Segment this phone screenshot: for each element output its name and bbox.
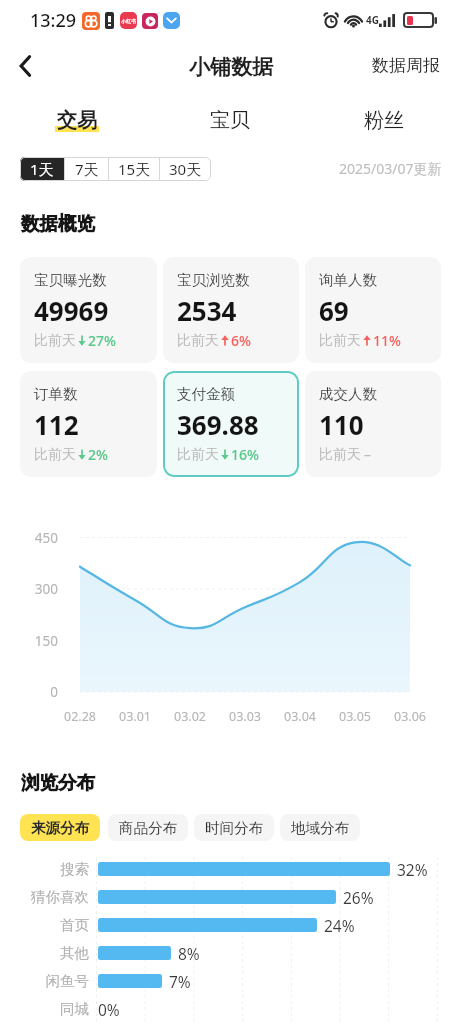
staticText: 询单人数: [319, 271, 377, 289]
staticText: 比前天: [34, 446, 76, 464]
staticText: 32%: [397, 859, 428, 880]
button[interactable]: 成交人数: [305, 371, 441, 477]
button[interactable]: 订单数: [20, 371, 157, 477]
button[interactable]: 其他: [0, 939, 461, 967]
button[interactable]: 1天: [20, 157, 64, 181]
button[interactable]: 7天: [65, 157, 108, 181]
button[interactable]: 搜索: [0, 855, 461, 883]
staticText: 小铺数据: [189, 54, 273, 80]
button[interactable]: 15天: [109, 157, 159, 181]
staticText: 成交人数: [319, 385, 377, 403]
button[interactable]: 宝贝: [153, 99, 307, 141]
button[interactable]: Back: [6, 46, 46, 86]
staticText: 112: [34, 407, 79, 442]
staticText: 比前天: [34, 332, 76, 350]
staticText: 1天: [30, 159, 54, 179]
staticText: 03.06: [385, 708, 435, 725]
staticText: 03.04: [275, 708, 325, 725]
button[interactable]: 同城: [0, 995, 461, 1023]
button[interactable]: 闲鱼号: [0, 967, 461, 995]
staticText: 13:29: [30, 8, 77, 33]
staticText: 30天: [169, 159, 202, 179]
staticText: 首页: [0, 916, 89, 934]
staticText: 11%: [373, 331, 401, 350]
staticText: 商品分布: [119, 819, 177, 837]
staticText: 02.28: [55, 708, 105, 725]
staticText: 闲鱼号: [0, 972, 89, 990]
staticText: 粉丝: [364, 108, 404, 133]
staticText: 宝贝曝光数: [34, 271, 107, 289]
button[interactable]: 支付金额: [163, 371, 299, 477]
staticText: –: [364, 445, 371, 464]
staticText: 地域分布: [291, 819, 349, 837]
button[interactable]: 来源分布: [20, 814, 100, 841]
button[interactable]: 宝贝曝光数: [20, 257, 157, 363]
button[interactable]: 交易: [0, 99, 153, 141]
button[interactable]: 地域分布: [280, 814, 360, 841]
staticText: 2534: [177, 293, 237, 328]
staticText: 2025/03/07更新: [339, 159, 442, 178]
button[interactable]: 询单人数: [305, 257, 441, 363]
staticText: 24%: [324, 915, 355, 936]
button[interactable]: 数据周报: [362, 48, 461, 83]
staticText: 来源分布: [31, 819, 89, 837]
staticText: 小红书: [121, 18, 136, 24]
staticText: 比前天: [319, 332, 361, 350]
staticText: 26%: [343, 887, 374, 908]
staticText: 15天: [118, 159, 151, 179]
staticText: 16%: [231, 445, 259, 464]
staticText: 猜你喜欢: [0, 888, 89, 906]
staticText: 03.02: [165, 708, 215, 725]
button[interactable]: 宝贝浏览数: [163, 257, 299, 363]
staticText: 4G: [366, 13, 379, 27]
staticText: 7天: [75, 159, 99, 179]
staticText: 订单数: [34, 385, 78, 403]
staticText: 搜索: [0, 860, 89, 878]
staticText: 69: [319, 293, 349, 328]
staticText: 交易: [57, 108, 97, 133]
staticText: 宝贝: [210, 108, 250, 133]
staticText: 支付金额: [177, 385, 235, 403]
button[interactable]: 粉丝: [307, 99, 461, 141]
staticText: 369.88: [177, 407, 259, 442]
staticText: 300: [18, 580, 58, 598]
staticText: 2%: [88, 445, 108, 464]
staticText: 0: [18, 683, 58, 701]
staticText: 6%: [231, 331, 251, 350]
staticText: 时间分布: [205, 819, 263, 837]
button[interactable]: 猜你喜欢: [0, 883, 461, 911]
staticText: 7%: [169, 971, 191, 992]
staticText: 其他: [0, 944, 89, 962]
button[interactable]: 首页: [0, 911, 461, 939]
button[interactable]: 30天: [160, 157, 211, 181]
staticText: 同城: [0, 1000, 89, 1018]
staticText: 比前天: [319, 446, 361, 464]
staticText: 数据概览: [21, 212, 95, 235]
button[interactable]: 时间分布: [194, 814, 274, 841]
staticText: 8%: [178, 943, 200, 964]
staticText: 450: [18, 529, 58, 547]
staticText: 27%: [88, 331, 116, 350]
staticText: 比前天: [177, 446, 219, 464]
staticText: 数据周报: [372, 55, 440, 76]
staticText: 03.05: [330, 708, 380, 725]
staticText: 浏览分布: [21, 771, 95, 794]
staticText: 比前天: [177, 332, 219, 350]
staticText: 49969: [34, 293, 109, 328]
staticText: 150: [18, 632, 58, 650]
staticText: 0%: [98, 999, 120, 1020]
staticText: 03.01: [110, 708, 160, 725]
staticText: 03.03: [220, 708, 270, 725]
staticText: 宝贝浏览数: [177, 271, 250, 289]
staticText: 110: [319, 407, 364, 442]
button[interactable]: 商品分布: [108, 814, 188, 841]
